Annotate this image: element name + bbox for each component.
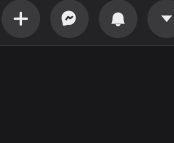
button[interactable]: Collapse xyxy=(147,0,174,38)
button[interactable]: New xyxy=(2,0,40,38)
button[interactable]: Messenger xyxy=(50,0,89,38)
button[interactable]: Notifications xyxy=(99,0,137,38)
